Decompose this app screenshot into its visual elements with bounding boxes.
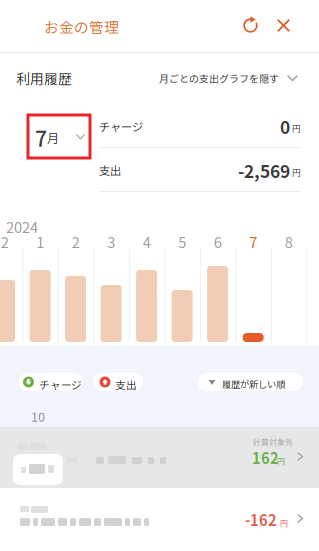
button[interactable]: チャージ (19, 373, 83, 391)
staticText: 円 (292, 166, 301, 178)
button[interactable]: 履歴が新しい順 (198, 373, 303, 391)
staticText: 7 (249, 231, 257, 252)
staticText: 2 (72, 231, 80, 252)
staticText: 3 (107, 231, 115, 252)
staticText: -162 (245, 509, 277, 530)
staticText: 1 (36, 231, 44, 252)
staticText: 利用履歴 (16, 68, 72, 88)
staticText: お金の管理 (44, 16, 119, 37)
staticText: 支出 (115, 377, 137, 392)
staticText: チャージ (99, 118, 143, 134)
staticText: 円 (292, 122, 301, 134)
staticText: 6 (214, 231, 222, 252)
button[interactable]: Close (267, 9, 301, 43)
staticText: 支出 (99, 162, 121, 178)
staticText: 計算対象外 (253, 436, 293, 448)
button[interactable]: 月ごとの支出グラフを隠す (159, 65, 304, 91)
button[interactable]: 計算対象外 (0, 427, 319, 488)
staticText: -2,569 (238, 158, 290, 183)
staticText: 162 (252, 447, 279, 468)
staticText: チャージ (39, 377, 82, 392)
staticText: 円 (280, 517, 288, 529)
staticText: 2024 (6, 216, 38, 237)
button[interactable]: -162 (0, 488, 319, 549)
staticText: 8 (285, 231, 293, 252)
staticText: 円 (277, 455, 285, 467)
button[interactable]: 7 (28, 115, 90, 158)
staticText: 月ごとの支出グラフを隠す (159, 71, 279, 85)
staticText: 履歴が新しい順 (222, 377, 285, 390)
staticText: 7 (35, 122, 47, 153)
staticText: 月 (47, 129, 59, 146)
button[interactable]: Refresh (234, 9, 268, 43)
staticText: 2 (1, 231, 9, 252)
staticText: 10 (31, 407, 45, 425)
staticText: 4 (143, 231, 151, 252)
staticText: 0 (280, 114, 290, 139)
staticText: 5 (178, 231, 186, 252)
button[interactable]: 支出 (93, 373, 143, 391)
